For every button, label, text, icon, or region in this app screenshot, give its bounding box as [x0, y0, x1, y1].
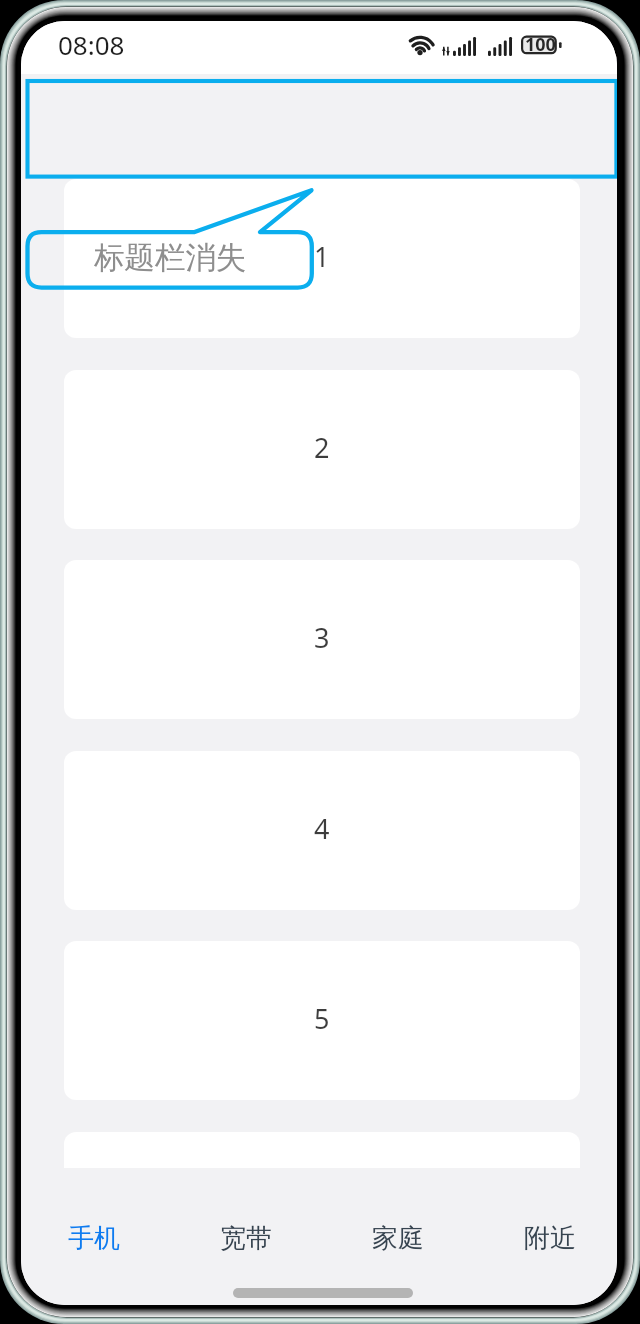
staticText: 4 [314, 810, 330, 847]
button[interactable]: 1 [64, 179, 580, 338]
staticText: 2 [314, 429, 330, 466]
staticText: 附近 [524, 1222, 576, 1255]
button[interactable]: 5 [64, 941, 580, 1100]
button[interactable]: 3 [64, 560, 580, 719]
staticText: 宽带 [220, 1222, 272, 1255]
staticText: 5 [314, 1000, 330, 1037]
staticText: 100 [525, 32, 556, 53]
button[interactable]: 附近 [474, 1168, 617, 1281]
staticText: 家庭 [372, 1222, 424, 1255]
button[interactable]: 宽带 [170, 1168, 322, 1281]
staticText: 标题栏消失 [94, 239, 247, 277]
staticText: 3 [314, 619, 330, 656]
staticText: 手机 [68, 1222, 120, 1255]
button[interactable]: 4 [64, 751, 580, 910]
button[interactable]: 手机 [21, 1168, 170, 1281]
button[interactable]: 2 [64, 370, 580, 529]
staticText: 08:08 [58, 27, 125, 62]
staticText: 1 [314, 238, 330, 275]
button[interactable]: 家庭 [322, 1168, 474, 1281]
